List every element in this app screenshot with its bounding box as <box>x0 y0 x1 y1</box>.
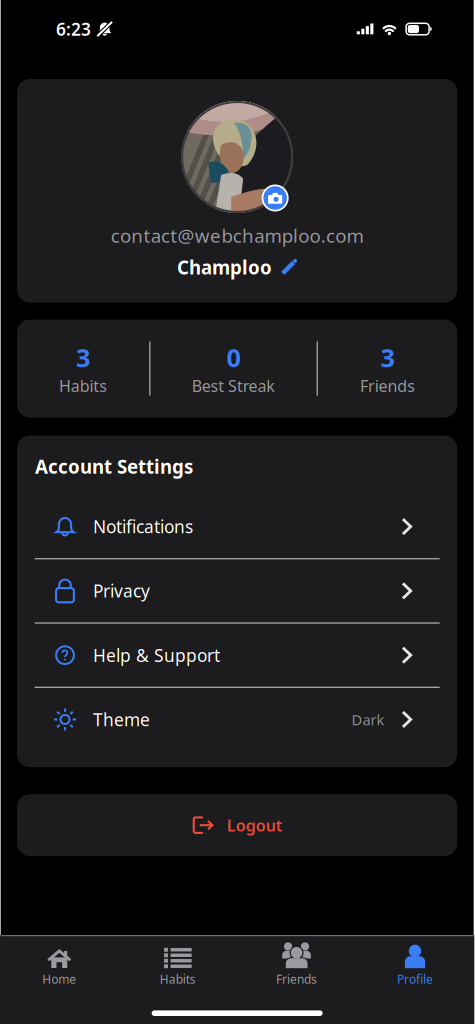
staticText: Help & Support <box>93 644 220 667</box>
staticText: Champloo <box>177 255 272 280</box>
button[interactable]: Profile <box>356 938 474 987</box>
staticText: contact@webchamploo.com <box>111 223 364 248</box>
staticText: 3 <box>76 341 90 374</box>
staticText: Habits <box>160 971 196 987</box>
button[interactable]: Theme <box>34 688 440 751</box>
staticText: Theme <box>93 708 150 731</box>
staticText: Friends <box>360 375 415 396</box>
button[interactable]: Help & Support <box>34 624 440 687</box>
staticText: 3 <box>381 341 395 374</box>
button[interactable]: Privacy <box>34 559 440 622</box>
button[interactable]: Logout <box>17 794 457 856</box>
staticText: Friends <box>276 971 317 987</box>
staticText: Notifications <box>93 515 193 538</box>
button[interactable]: Notifications <box>34 495 440 558</box>
button[interactable]: Edit name <box>281 259 297 275</box>
staticText: Habits <box>59 375 107 396</box>
staticText: Dark <box>351 710 384 729</box>
staticText: Profile <box>397 971 433 987</box>
staticText: 6:23 <box>56 17 91 40</box>
staticText: Privacy <box>93 579 150 602</box>
button[interactable]: Home <box>0 938 119 987</box>
button[interactable]: Friends <box>237 938 356 987</box>
staticText: Account Settings <box>35 454 193 479</box>
staticText: 0 <box>227 341 241 374</box>
staticText: Home <box>42 971 76 987</box>
staticText: Best Streak <box>192 375 275 396</box>
staticText: Logout <box>227 814 282 836</box>
button[interactable]: Habits <box>119 938 237 987</box>
